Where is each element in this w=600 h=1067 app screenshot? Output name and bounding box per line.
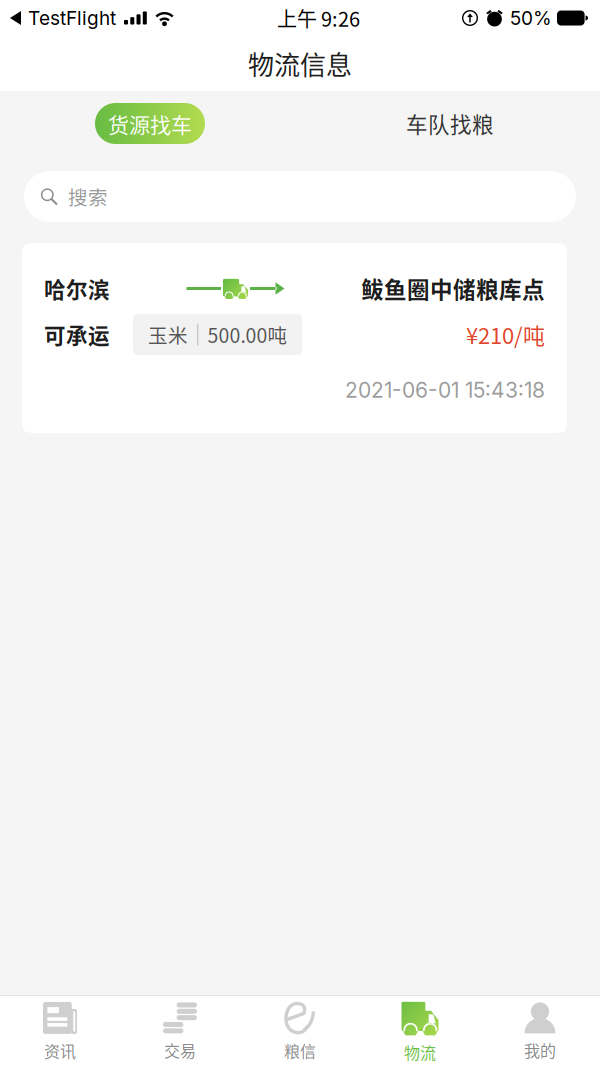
button[interactable]: 车队找粮 — [406, 103, 494, 144]
button[interactable]: 搜索 — [24, 171, 576, 222]
staticText: 哈尔滨 — [44, 273, 110, 304]
button[interactable]: 货源找车 — [95, 103, 205, 144]
staticText: ¥210/吨 — [466, 319, 545, 350]
staticText: 物流信息 — [248, 45, 352, 82]
staticText: 资讯 — [44, 1039, 76, 1062]
staticText: 玉米 — [148, 320, 188, 349]
staticText: 500.00吨 — [207, 320, 287, 349]
button[interactable]: 哈尔滨 — [22, 243, 567, 433]
staticText: 2021-06-01 15:43:18 — [345, 377, 545, 403]
staticText: TestFlight — [28, 6, 116, 29]
staticText: 交易 — [164, 1038, 196, 1062]
staticText: 50% — [510, 6, 552, 29]
button[interactable]: 资讯 — [0, 990, 120, 1067]
staticText: 上午 9:26 — [277, 3, 360, 32]
staticText: 我的 — [524, 1038, 556, 1062]
staticText: 货源找车 — [108, 108, 192, 139]
button[interactable]: 我的 — [480, 990, 600, 1067]
button[interactable]: 物流 — [360, 988, 480, 1067]
staticText: 物流 — [404, 1040, 436, 1064]
button[interactable]: 交易 — [120, 990, 240, 1067]
staticText: 鲅鱼圈中储粮库点 — [361, 272, 545, 305]
staticText: 粮信 — [284, 1039, 316, 1062]
staticText: 可承运 — [44, 319, 110, 350]
button[interactable]: 粮信 — [240, 990, 360, 1067]
staticText: 搜索 — [68, 182, 108, 211]
staticText: 车队找粮 — [406, 108, 494, 139]
